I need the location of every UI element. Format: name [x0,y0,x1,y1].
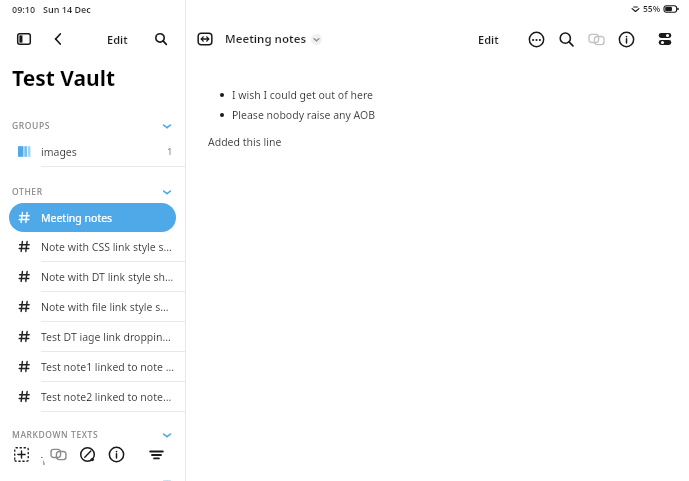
staticText: Note with file link style she… [41,300,175,314]
button[interactable]: Test inidex issue [0,446,185,475]
staticText: Meeting notes [225,31,307,47]
staticText: Edit [478,32,499,47]
staticText: 09:10 [12,3,36,15]
button[interactable]: Edit [94,25,141,53]
staticText: Test note1 linked to note 2… [41,360,175,374]
button[interactable]: Expand [196,30,214,48]
button[interactable]: More [528,31,545,48]
button[interactable]: Test DT iage link dropping… [0,322,185,351]
button[interactable]: Edit [465,25,512,53]
button[interactable]: Meeting notes [9,203,176,232]
button[interactable]: Chat [50,446,67,463]
staticText: images [41,145,77,159]
staticText: I wish I could get out of here [232,88,373,102]
staticText: Note with CSS link style s… [41,240,172,254]
button[interactable]: OTHER [0,181,185,203]
staticText: Test inidex issue [41,454,122,468]
staticText: Test DT iage link dropping… [41,330,175,344]
button[interactable]: Sync [79,446,96,463]
button[interactable]: Note with DT link style she… [0,262,185,291]
button[interactable]: Meeting notes [225,31,322,47]
staticText: Added this line [208,135,282,149]
staticText: MARKDOWN TEXTS [12,429,99,441]
staticText: 55% [643,3,661,15]
button[interactable]: Sidebar [10,25,38,53]
staticText: Edit [107,32,128,47]
staticText: Test Vault [12,64,116,93]
staticText: 1 [167,145,173,158]
staticText: Test note2 linked to note1… [41,390,175,404]
button[interactable]: Settings [651,25,679,53]
staticText: Note with DT link style she… [41,270,175,284]
button[interactable]: GROUPS [0,115,185,137]
button[interactable]: Search [558,31,575,48]
staticText: Sun 14 Dec [43,3,91,15]
button[interactable]: Filter [141,439,171,469]
staticText: OTHER [12,186,43,198]
button[interactable]: Back [44,25,72,53]
button[interactable]: MARKDOWN TEXTS [0,424,185,446]
button[interactable]: Comments [588,31,605,48]
staticText: Meeting notes [41,211,113,225]
button[interactable]: images [0,137,185,166]
button[interactable]: Search [147,25,175,53]
button[interactable]: Note with CSS link style s… [0,232,185,261]
button[interactable]: Test note2 linked to note1… [0,382,185,411]
button[interactable]: Test note1 linked to note 2… [0,352,185,381]
button[interactable]: Add [6,439,36,469]
button[interactable]: Note with file link style she… [0,292,185,321]
button[interactable]: Info [108,446,125,463]
staticText: GROUPS [12,120,50,132]
staticText: Please nobody raise any AOB [232,108,376,122]
button[interactable]: Info [618,31,635,48]
